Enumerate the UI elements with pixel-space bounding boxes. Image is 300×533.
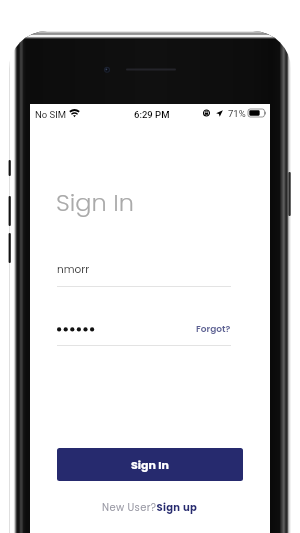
staticText: 6:29 PM: [134, 109, 170, 120]
staticText: nmorr: [57, 262, 90, 277]
staticText: New User?Sign up: [102, 500, 198, 514]
staticText: Sign In: [131, 457, 169, 472]
staticText: 71%: [228, 108, 246, 119]
button[interactable]: Forgot?: [196, 323, 231, 336]
button[interactable]: New User?Sign up: [102, 500, 198, 514]
staticText: Forgot?: [196, 323, 231, 336]
staticText: No SIM: [35, 109, 67, 120]
staticText: Sign In: [56, 186, 134, 220]
button[interactable]: Sign In: [57, 448, 243, 481]
